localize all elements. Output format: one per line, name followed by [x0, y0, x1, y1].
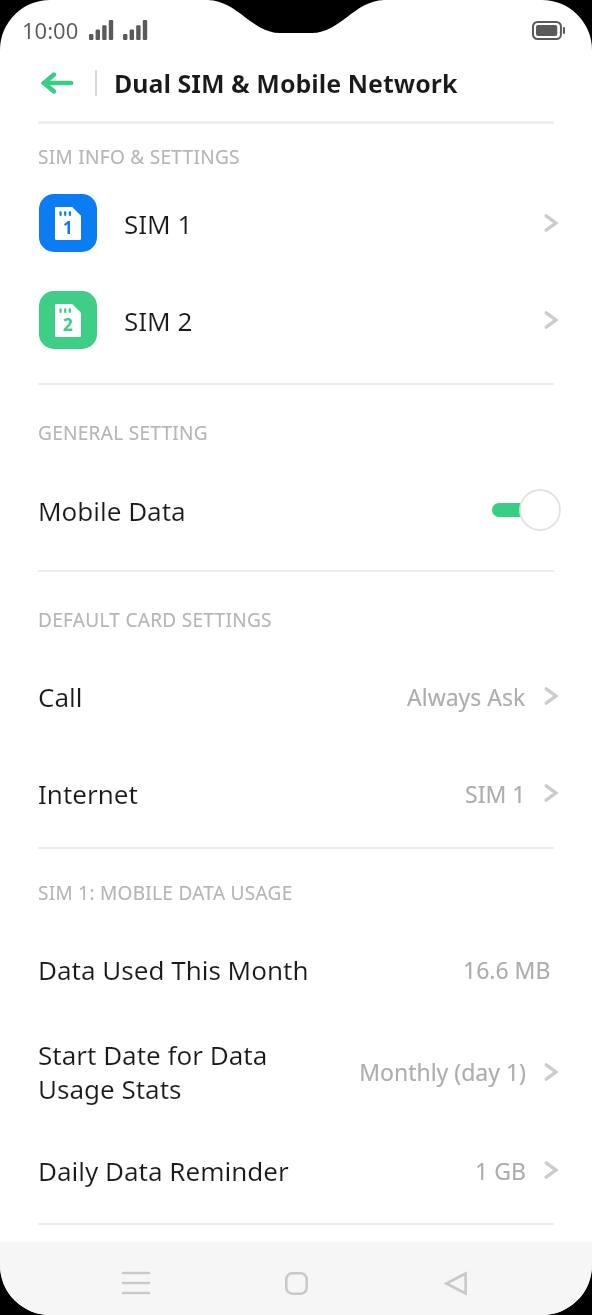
button[interactable]: Daily Data Reminder — [0, 1150, 592, 1190]
staticText: Internet — [38, 776, 138, 811]
button[interactable]: Internet — [0, 773, 592, 813]
staticText: 16.6 MB — [463, 954, 551, 985]
staticText: SIM 1 — [124, 206, 193, 241]
button[interactable]: Home — [265, 1252, 327, 1314]
staticText: 1 — [63, 216, 73, 239]
staticText: 2 — [63, 313, 73, 336]
staticText: Daily Data Reminder — [38, 1153, 289, 1188]
button[interactable]: Call — [0, 676, 592, 716]
staticText: Start Date for Data Usage Stats — [38, 1037, 268, 1106]
staticText: SIM 1: MOBILE DATA USAGE — [38, 880, 293, 906]
button[interactable]: Data Used This Month — [0, 949, 592, 989]
staticText: GENERAL SETTING — [38, 420, 208, 446]
staticText: Monthly (day 1) — [359, 1056, 526, 1087]
staticText: Data Used This Month — [38, 952, 309, 987]
button[interactable]: 2 — [0, 291, 592, 349]
staticText: 1 GB — [475, 1155, 526, 1186]
button[interactable]: Mobile Data toggle — [490, 488, 562, 532]
button[interactable]: Back — [425, 1252, 487, 1314]
button[interactable]: Mobile Data — [0, 488, 592, 532]
staticText: Dual SIM & Mobile Network — [114, 66, 458, 100]
staticText: SIM 2 — [124, 303, 193, 338]
staticText: Call — [38, 679, 83, 714]
staticText: Mobile Data — [38, 493, 186, 528]
button[interactable]: Start Date for Data Usage Stats — [0, 1037, 592, 1106]
staticText: Always Ask — [407, 681, 526, 712]
staticText: DEFAULT CARD SETTINGS — [38, 607, 272, 633]
button[interactable]: Back — [30, 56, 84, 110]
button[interactable]: 1 — [0, 194, 592, 252]
staticText: SIM 1 — [465, 778, 526, 809]
button[interactable]: Recent apps — [105, 1252, 167, 1314]
staticText: 10:00 — [22, 15, 79, 45]
staticText: SIM INFO & SETTINGS — [38, 144, 240, 170]
